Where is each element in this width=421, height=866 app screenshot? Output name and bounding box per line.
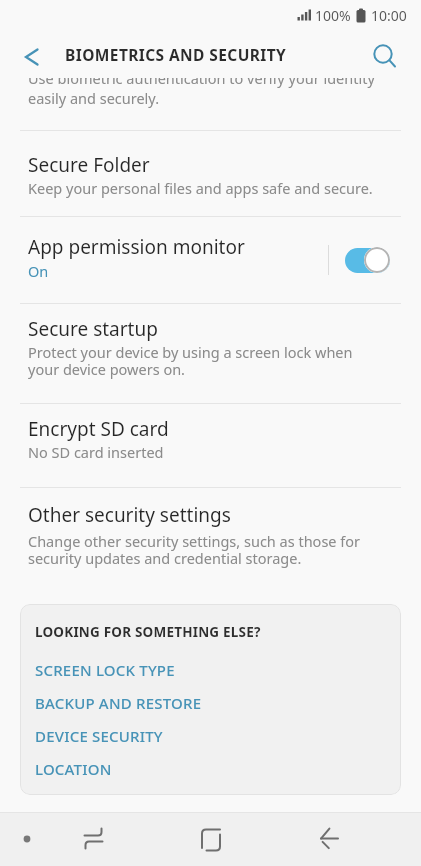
staticText: LOCATION (35, 759, 112, 779)
button[interactable] (17, 829, 37, 849)
button[interactable]: App permission monitor (0, 217, 421, 303)
staticText: SCREEN LOCK TYPE (35, 660, 175, 680)
staticText: BACKUP AND RESTORE (35, 693, 202, 713)
staticText: BIOMETRICS AND SECURITY (65, 44, 287, 65)
staticText: On (28, 261, 49, 281)
button[interactable]: SCREEN LOCK TYPE (35, 653, 387, 686)
button[interactable]: Encrypt SD card (0, 404, 421, 487)
staticText: App permission monitor (28, 234, 245, 260)
button[interactable] (71, 817, 115, 861)
staticText: No SD card inserted (28, 442, 164, 462)
staticText: Secure startup (28, 316, 158, 342)
button[interactable]: DEVICE SECURITY (35, 719, 387, 752)
button[interactable] (189, 817, 233, 861)
button[interactable]: LOCATION (35, 752, 387, 785)
button[interactable]: Other security settings (0, 488, 421, 604)
button[interactable]: BACKUP AND RESTORE (35, 686, 387, 719)
staticText: Change other security settings, such as … (28, 531, 361, 568)
staticText: Use biometric authentication to verify y… (28, 78, 375, 108)
button[interactable] (0, 30, 56, 78)
button[interactable] (359, 30, 411, 78)
staticText: Keep your personal files and apps safe a… (28, 178, 373, 198)
staticText: LOOKING FOR SOMETHING ELSE? (35, 623, 261, 641)
staticText: 10:00 (371, 6, 407, 25)
button[interactable] (345, 247, 390, 273)
button[interactable]: Secure startup (0, 304, 421, 403)
staticText: Other security settings (28, 502, 231, 528)
staticText: DEVICE SECURITY (35, 726, 163, 746)
staticText: Protect your device by using a screen lo… (28, 342, 353, 379)
staticText: 100% (315, 6, 351, 25)
button[interactable] (307, 817, 351, 861)
button[interactable]: Secure Folder (0, 131, 421, 216)
staticText: Encrypt SD card (28, 416, 169, 442)
staticText: Secure Folder (28, 152, 150, 178)
